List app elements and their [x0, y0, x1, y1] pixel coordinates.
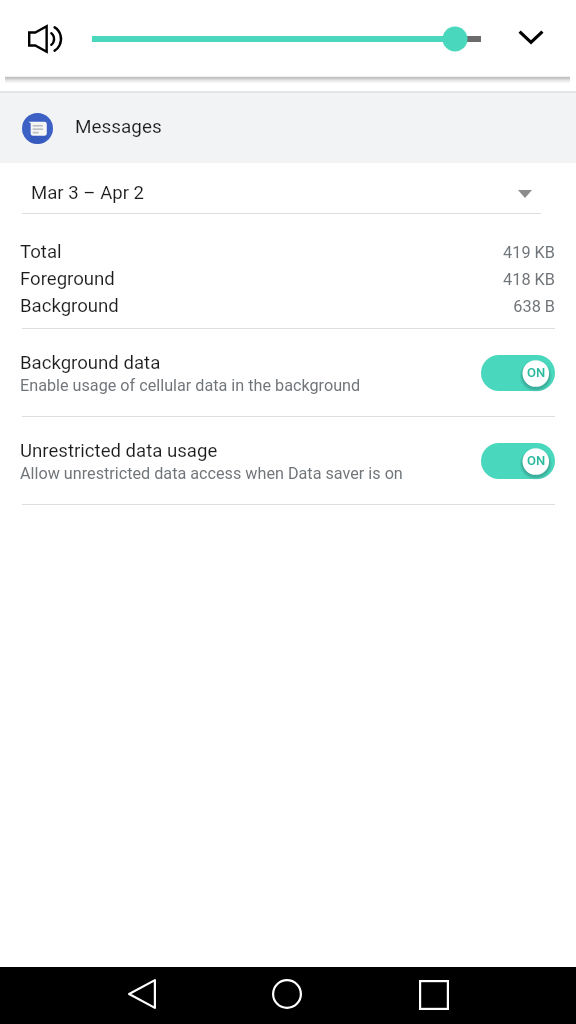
staticText: 638 B [400, 297, 555, 316]
button[interactable]: Volume slider [80, 25, 493, 53]
staticText: ON [527, 365, 546, 380]
button[interactable]: Home [263, 970, 311, 1018]
staticText: 418 KB [400, 270, 555, 289]
button[interactable]: Volume [15, 15, 74, 63]
button[interactable]: Background data [0, 352, 576, 410]
button[interactable]: Unrestricted data usage [0, 440, 576, 498]
button[interactable]: Background [0, 295, 576, 322]
button[interactable]: Total [0, 241, 576, 268]
staticText: Total [20, 241, 62, 263]
staticText: ON [527, 453, 546, 468]
button[interactable]: Toggle on [481, 355, 555, 391]
button[interactable]: Foreground [0, 268, 576, 295]
staticText: Allow unrestricted data access when Data… [20, 464, 403, 483]
button[interactable]: Back [118, 970, 166, 1018]
staticText: Foreground [20, 268, 115, 290]
staticText: Background data [20, 352, 161, 374]
staticText: Messages [75, 115, 162, 137]
staticText: 419 KB [400, 243, 555, 262]
button[interactable]: Messages [0, 93, 576, 163]
button[interactable]: Toggle on [481, 443, 555, 479]
staticText: Mar 3 – Apr 2 [31, 182, 145, 204]
button[interactable]: Expand volume controls [507, 13, 555, 61]
staticText: Background [20, 295, 119, 317]
staticText: Unrestricted data usage [20, 440, 218, 462]
button[interactable]: Recent apps [410, 971, 458, 1019]
button[interactable]: Mar 3 – Apr 2 [0, 172, 576, 214]
staticText: Enable usage of cellular data in the bac… [20, 376, 361, 395]
